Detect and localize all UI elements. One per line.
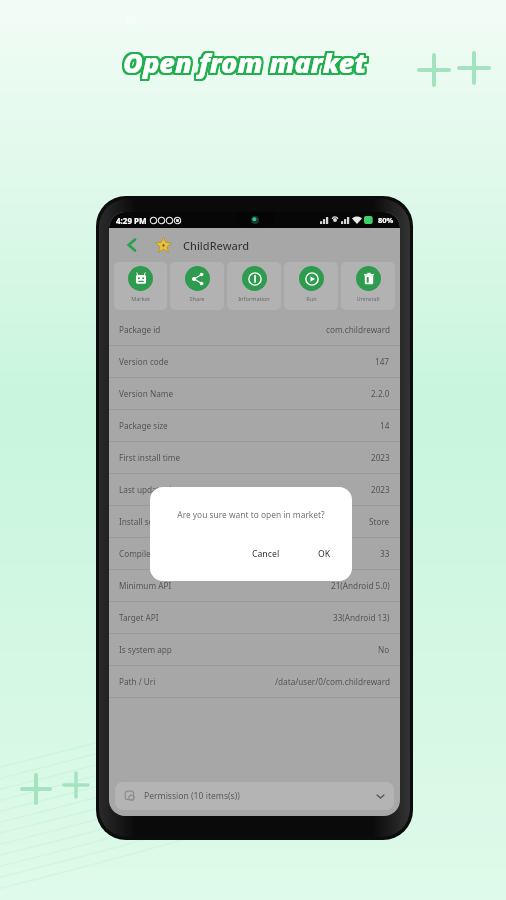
staticText: Open from market — [124, 46, 368, 83]
staticText: /data/user/0/com.childreward — [275, 676, 390, 687]
staticText: Open from market — [122, 42, 366, 79]
staticText: Open from market — [123, 45, 367, 82]
button[interactable]: Market — [114, 262, 167, 310]
staticText: Open from market — [125, 43, 369, 80]
staticText: Open from market — [125, 45, 369, 82]
button[interactable]: Path / Uri — [109, 666, 400, 697]
button[interactable]: Install source — [109, 506, 400, 537]
staticText: Path / Uri — [119, 676, 156, 687]
staticText: Open from market — [123, 44, 367, 81]
staticText: Open from market — [122, 44, 366, 81]
button[interactable]: Package id — [109, 314, 400, 345]
staticText: Permission (10 items(s)) — [144, 790, 240, 802]
button[interactable]: Back — [119, 232, 145, 258]
staticText: 2.2.0 — [371, 388, 390, 399]
staticText: Open from market — [121, 46, 365, 83]
button[interactable]: Permission (10 items(s)) — [115, 782, 394, 810]
staticText: Open from market — [124, 43, 368, 80]
staticText: First install time — [119, 452, 181, 463]
staticText: Open from market — [121, 45, 365, 82]
staticText: 80% — [378, 215, 394, 225]
staticText: No — [378, 644, 390, 655]
button[interactable]: Run — [284, 262, 338, 310]
button[interactable]: Package size — [109, 410, 400, 441]
button[interactable]: Is system app — [109, 634, 400, 665]
staticText: Store — [369, 516, 390, 527]
staticText: Open from market — [123, 46, 367, 83]
staticText: Information — [238, 295, 270, 303]
staticText: 2023 — [371, 484, 390, 495]
staticText: Open from market — [121, 43, 365, 80]
staticText: Package size — [119, 420, 168, 431]
staticText: Target API — [119, 612, 159, 623]
button[interactable]: Compile SDK Version — [109, 538, 400, 569]
button[interactable]: Share — [170, 262, 224, 310]
staticText: 4:29 PM — [116, 215, 147, 226]
staticText: Version code — [119, 356, 169, 367]
staticText: Open from market — [124, 45, 368, 82]
staticText: Are you sure want to open in market? — [177, 509, 325, 520]
staticText: Open from market — [125, 46, 369, 83]
staticText: Cancel — [252, 548, 280, 560]
button[interactable]: Uninstall — [341, 262, 395, 310]
staticText: Open from market — [125, 42, 369, 79]
staticText: 21(Android 5.0) — [331, 580, 390, 591]
staticText: Run — [306, 295, 317, 303]
staticText: Open from market — [123, 42, 367, 79]
button[interactable]: First install time — [109, 442, 400, 473]
staticText: Package id — [119, 324, 161, 335]
staticText: Open from market — [123, 43, 367, 80]
staticText: 33 — [380, 548, 390, 559]
staticText: Open from market — [124, 42, 368, 79]
staticText: Open from market — [121, 42, 365, 79]
staticText: 147 — [375, 356, 390, 367]
staticText: 14 — [380, 420, 390, 431]
staticText: Open from market — [122, 46, 366, 83]
button[interactable]: Target API — [109, 602, 400, 633]
staticText: Minimum API — [119, 580, 172, 591]
staticText: 2023 — [371, 452, 390, 463]
staticText: Open from market — [125, 44, 369, 81]
staticText: 33(Android 13) — [333, 612, 390, 623]
staticText: OK — [318, 548, 331, 560]
staticText: Uninstall — [356, 295, 380, 303]
button[interactable]: Cancel — [245, 545, 287, 563]
button[interactable]: Information — [227, 262, 281, 310]
staticText: Open from market — [122, 43, 366, 80]
staticText: Last update time — [119, 484, 184, 495]
button[interactable]: Minimum API — [109, 570, 400, 601]
button[interactable]: Last update time — [109, 474, 400, 505]
staticText: Open from market — [124, 44, 368, 81]
staticText: Compile SDK Version — [119, 548, 200, 559]
button[interactable]: Version Name — [109, 378, 400, 409]
staticText: Share — [189, 295, 205, 303]
staticText: Open from market — [121, 44, 365, 81]
staticText: Open from market — [122, 45, 366, 82]
staticText: Install source — [119, 516, 171, 527]
button[interactable]: Version code — [109, 346, 400, 377]
staticText: Is system app — [119, 644, 172, 655]
staticText: Version Name — [119, 388, 174, 399]
staticText: ChildReward — [183, 238, 250, 253]
staticText: Market — [131, 295, 150, 303]
staticText: com.childreward — [326, 324, 390, 335]
button[interactable]: OK — [311, 545, 338, 563]
